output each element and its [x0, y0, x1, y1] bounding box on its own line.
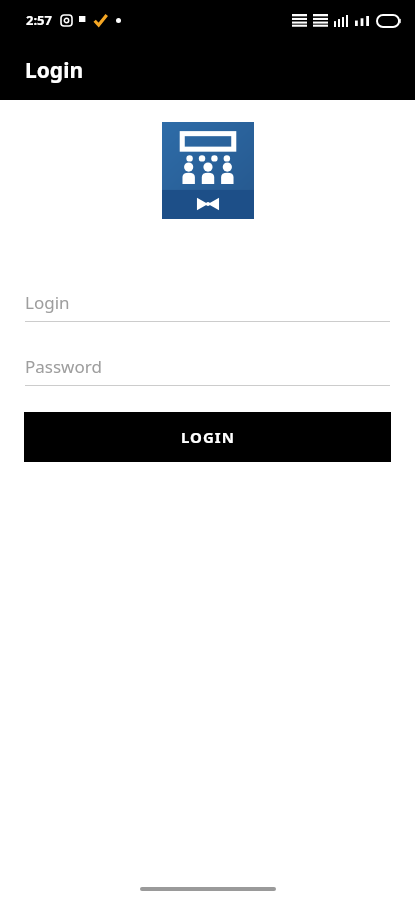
- staticText: Login: [25, 291, 70, 314]
- staticText: 2:57: [26, 11, 52, 29]
- staticText: LOGIN: [181, 427, 235, 447]
- button[interactable]: LOGIN: [24, 412, 391, 462]
- button[interactable]: Login: [25, 291, 390, 322]
- staticText: Login: [25, 56, 84, 85]
- staticText: Password: [25, 355, 102, 378]
- button[interactable]: Password: [25, 355, 390, 386]
